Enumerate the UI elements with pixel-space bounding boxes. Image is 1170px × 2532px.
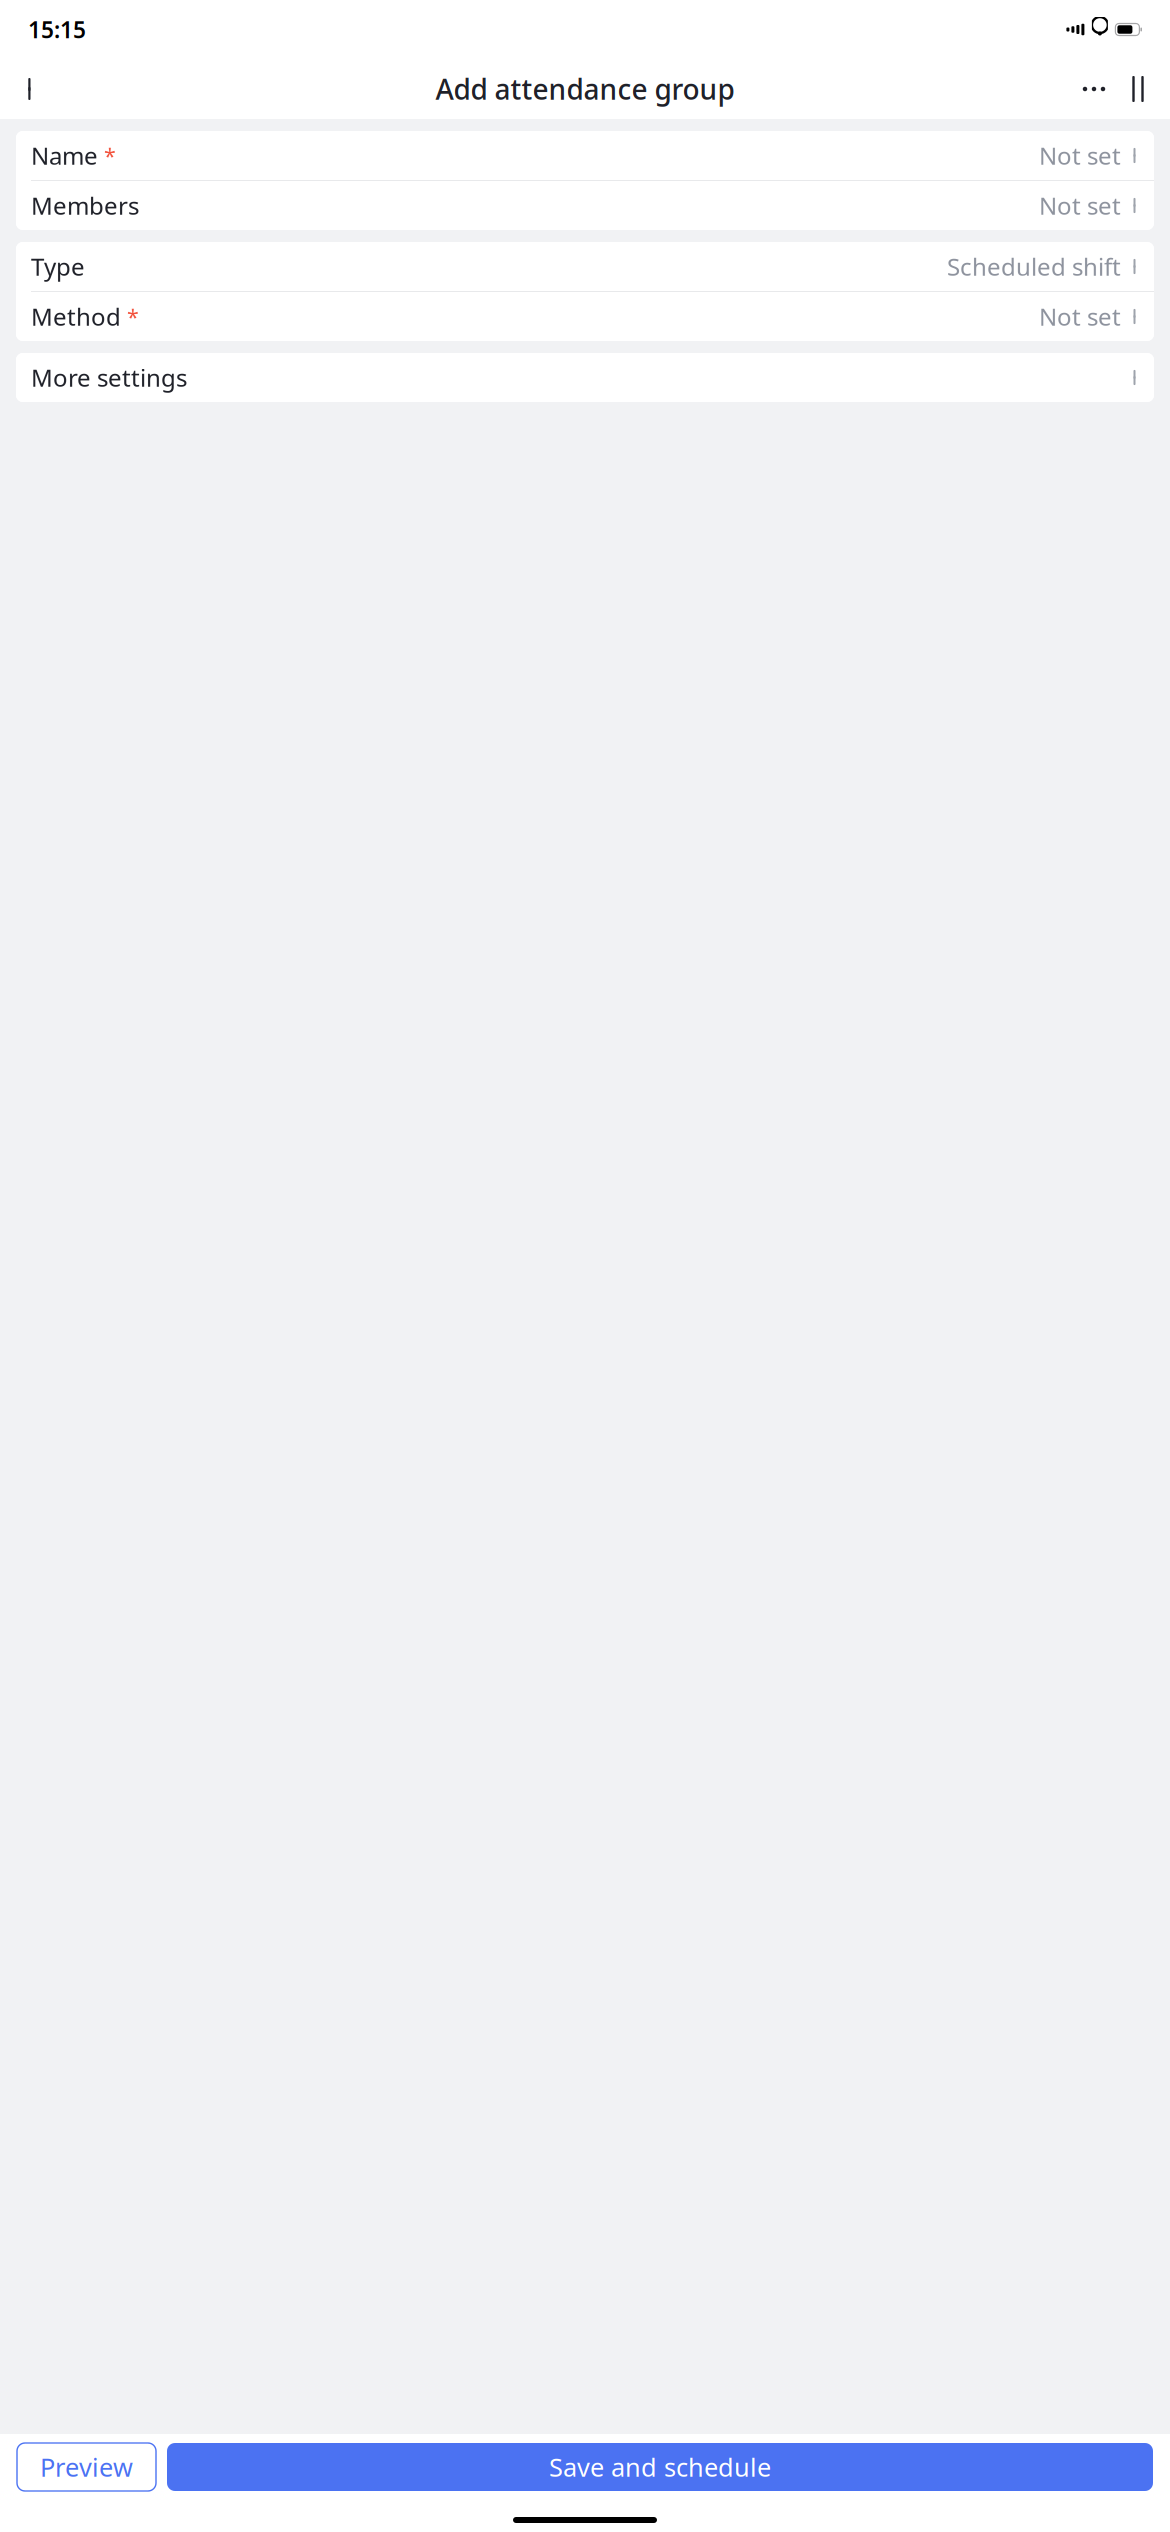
button[interactable]: Method xyxy=(16,292,1154,341)
button[interactable]: More options xyxy=(1072,67,1116,111)
staticText: Not set xyxy=(1039,140,1121,171)
staticText: Method xyxy=(31,301,121,332)
button[interactable]: Close xyxy=(1116,67,1160,111)
button[interactable]: Back xyxy=(10,67,54,111)
staticText: Not set xyxy=(1039,190,1121,221)
staticText: Save and schedule xyxy=(549,2450,771,2484)
staticText: Not set xyxy=(1039,301,1121,332)
button[interactable]: More settings xyxy=(16,353,1154,402)
staticText: Name xyxy=(31,140,98,171)
staticText: Add attendance group xyxy=(435,70,734,108)
button[interactable]: Preview xyxy=(17,2443,156,2491)
button[interactable]: Type xyxy=(16,242,1154,291)
button[interactable]: Name xyxy=(16,131,1154,180)
staticText: * xyxy=(121,302,139,331)
staticText: * xyxy=(98,141,116,170)
staticText: 15:15 xyxy=(28,14,86,44)
staticText: Type xyxy=(31,251,85,282)
staticText: Members xyxy=(31,190,139,221)
staticText: Scheduled shift xyxy=(947,251,1121,282)
button[interactable]: Members xyxy=(16,181,1154,230)
button[interactable]: Save and schedule xyxy=(167,2443,1153,2491)
staticText: More settings xyxy=(31,362,187,393)
staticText: Preview xyxy=(40,2450,133,2484)
